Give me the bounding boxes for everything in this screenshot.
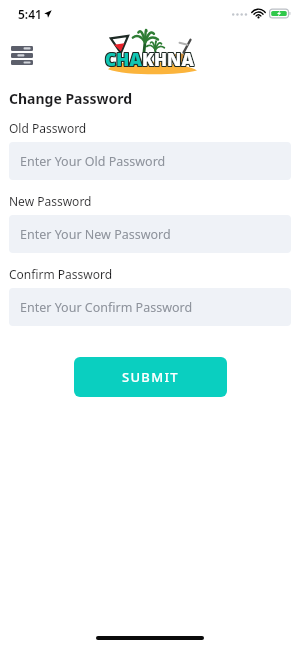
button[interactable]: Enter Your Confirm Password xyxy=(9,288,291,326)
staticText: CHA xyxy=(105,47,142,70)
staticText: Confirm Password xyxy=(9,266,113,282)
staticText: KHNA xyxy=(143,48,196,71)
staticText: CHA xyxy=(104,48,141,71)
staticText: 5:41 xyxy=(18,6,42,22)
staticText: CHA xyxy=(106,48,143,71)
staticText: CHA xyxy=(106,49,143,72)
button[interactable]: SUBMIT xyxy=(74,357,227,397)
staticText: Enter Your Old Password xyxy=(20,153,166,170)
staticText: KHNA xyxy=(143,47,196,70)
staticText: CHA xyxy=(104,47,141,70)
staticText: Enter Your Confirm Password xyxy=(20,299,193,316)
staticText: Old Password xyxy=(9,120,87,136)
staticText: Enter Your New Password xyxy=(20,226,171,243)
staticText: New Password xyxy=(9,193,92,209)
staticText: CHA xyxy=(106,47,143,70)
staticText: KHNA xyxy=(142,49,195,72)
button[interactable]: Enter Your New Password xyxy=(9,215,291,253)
button[interactable]: Enter Your Old Password xyxy=(9,142,291,180)
staticText: KHNA xyxy=(142,48,195,71)
staticText: KHNA xyxy=(141,49,194,72)
staticText: Change Password xyxy=(9,89,133,108)
staticText: CHA xyxy=(105,48,142,71)
staticText: KHNA xyxy=(142,47,195,70)
staticText: KHNA xyxy=(141,47,194,70)
staticText: KHNA xyxy=(143,49,196,72)
staticText: SUBMIT xyxy=(122,368,179,386)
staticText: KHNA xyxy=(141,48,194,71)
button[interactable]: Open navigation menu xyxy=(5,38,39,72)
staticText: CHA xyxy=(105,49,142,72)
staticText: CHA xyxy=(104,49,141,72)
